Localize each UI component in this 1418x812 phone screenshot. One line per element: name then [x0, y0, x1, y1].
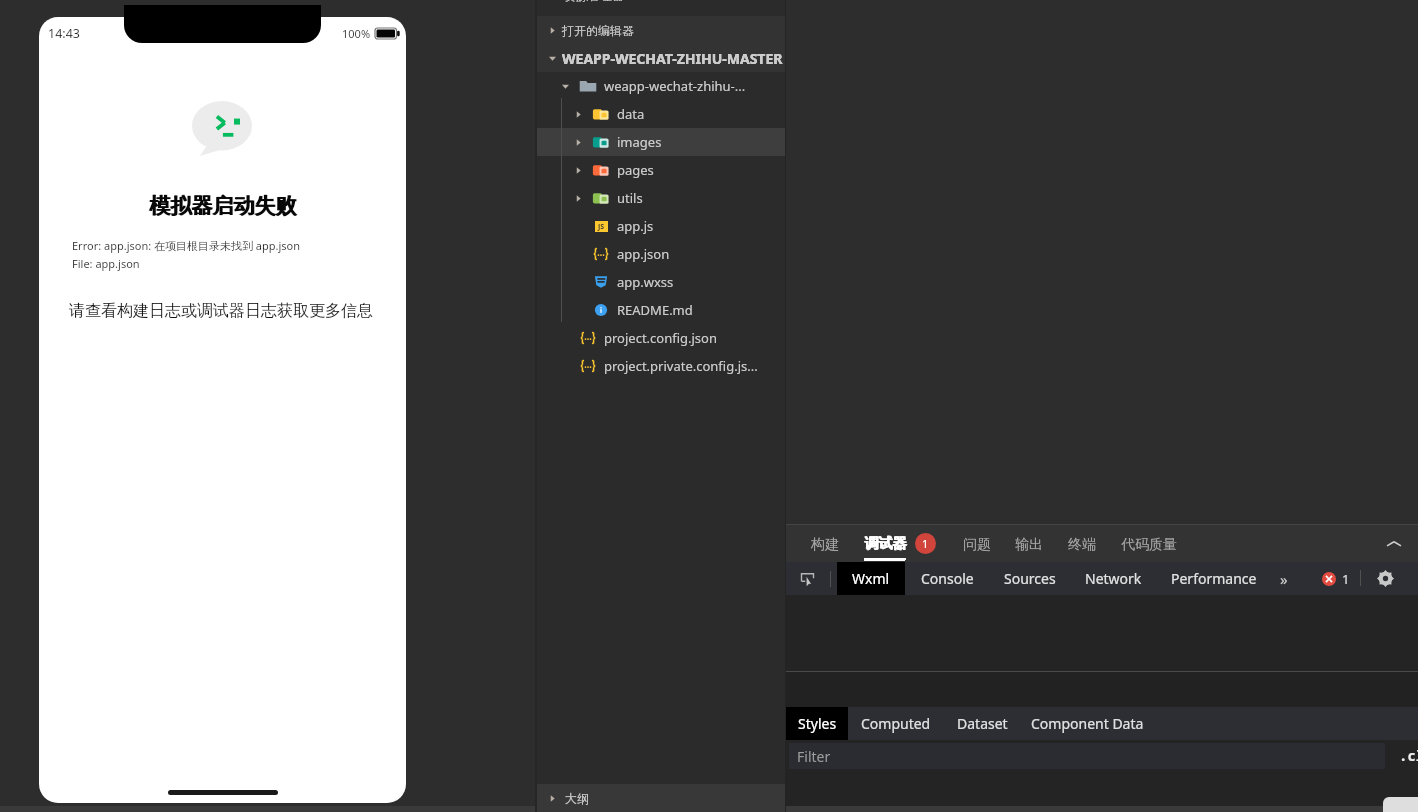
staticText: pages: [617, 161, 654, 179]
button[interactable]: 构建: [811, 525, 839, 562]
button[interactable]: weapp-wechat-zhihu-...: [537, 72, 785, 100]
staticText: 调试器: [864, 535, 906, 553]
button[interactable]: More tabs: [1272, 567, 1296, 591]
button[interactable]: project.private.config.js...: [537, 352, 785, 380]
staticText: »: [1280, 569, 1288, 589]
button[interactable]: data: [537, 100, 785, 128]
button[interactable]: 代码质量: [1121, 525, 1177, 562]
button[interactable]: Component Data: [1029, 707, 1146, 740]
button[interactable]: Collapse panel: [1382, 532, 1406, 556]
staticText: Wxml: [852, 569, 890, 588]
staticText: 调试器: [865, 535, 907, 553]
staticText: 资源管理器: [564, 0, 624, 3]
button[interactable]: app.json: [537, 240, 785, 268]
button[interactable]: pages: [537, 156, 785, 184]
staticText: app.wxss: [617, 273, 674, 291]
button[interactable]: project.config.json: [537, 324, 785, 352]
staticText: images: [617, 133, 662, 151]
staticText: utils: [617, 189, 643, 207]
staticText: weapp-wechat-zhihu-...: [604, 77, 746, 95]
staticText: 打开的编辑器: [562, 23, 634, 38]
button[interactable]: app.wxss: [537, 268, 785, 296]
staticText: 模拟器启动失败: [149, 193, 296, 219]
staticText: Console: [921, 569, 974, 588]
button[interactable]: 大纲: [537, 784, 785, 812]
staticText: WEAPP-WECHAT-ZHIHU-MASTER: [562, 49, 783, 68]
staticText: 模拟器启动失败: [150, 193, 297, 219]
staticText: data: [617, 105, 645, 123]
button[interactable]: 终端: [1068, 525, 1096, 562]
button[interactable]: images: [537, 128, 785, 156]
button[interactable]: 打开的编辑器: [537, 16, 785, 44]
staticText: 1: [922, 536, 929, 551]
button[interactable]: Wxml: [837, 562, 905, 595]
staticText: Component Data: [1031, 714, 1144, 733]
staticText: project.private.config.js...: [604, 357, 758, 375]
button[interactable]: Performance: [1169, 562, 1259, 595]
staticText: Network: [1085, 569, 1142, 588]
button[interactable]: JS: [537, 212, 785, 240]
staticText: Dataset: [957, 714, 1008, 733]
button[interactable]: README.md: [537, 296, 785, 324]
button[interactable]: 调试器: [864, 525, 906, 562]
staticText: app.json: [617, 245, 670, 263]
button[interactable]: Console: [919, 562, 976, 595]
staticText: Styles: [798, 714, 837, 733]
button[interactable]: Network: [1083, 562, 1144, 595]
staticText: File: app.json: [72, 256, 140, 271]
staticText: 1: [1342, 570, 1350, 588]
staticText: WEAPP-WECHAT-ZHIHU-MASTER: [562, 49, 783, 68]
button[interactable]: WEAPP-WECHAT-ZHIHU-MASTER: [537, 44, 785, 72]
staticText: 代码质量: [1121, 536, 1177, 554]
staticText: 构建: [811, 536, 839, 554]
staticText: 问题: [963, 536, 991, 554]
button[interactable]: utils: [537, 184, 785, 212]
button[interactable]: Sources: [1002, 562, 1058, 595]
staticText: 100%: [342, 26, 371, 41]
staticText: JS: [598, 222, 605, 232]
button[interactable]: 输出: [1015, 525, 1043, 562]
staticText: Error: app.json: 在项目根目录未找到 app.json: [72, 238, 301, 253]
staticText: .cl: [1399, 746, 1418, 765]
staticText: Computed: [861, 714, 931, 733]
button[interactable]: Styles: [786, 707, 848, 740]
staticText: Performance: [1171, 569, 1257, 588]
staticText: Sources: [1004, 569, 1056, 588]
button[interactable]: Settings: [1374, 567, 1396, 589]
button[interactable]: Dataset: [955, 707, 1010, 740]
staticText: README.md: [617, 301, 693, 319]
staticText: Filter: [797, 747, 831, 766]
staticText: 大纲: [565, 791, 589, 806]
staticText: app.js: [617, 217, 654, 235]
button[interactable]: 问题: [963, 525, 991, 562]
button[interactable]: Computed: [859, 707, 933, 740]
button[interactable]: Filter: [789, 743, 1385, 769]
staticText: 14:43: [48, 25, 80, 42]
button[interactable]: Select element: [796, 568, 818, 590]
staticText: project.config.json: [604, 329, 717, 347]
staticText: 请查看构建日志或调试器日志获取更多信息: [69, 301, 373, 321]
staticText: 终端: [1068, 536, 1096, 554]
staticText: 输出: [1015, 536, 1043, 554]
